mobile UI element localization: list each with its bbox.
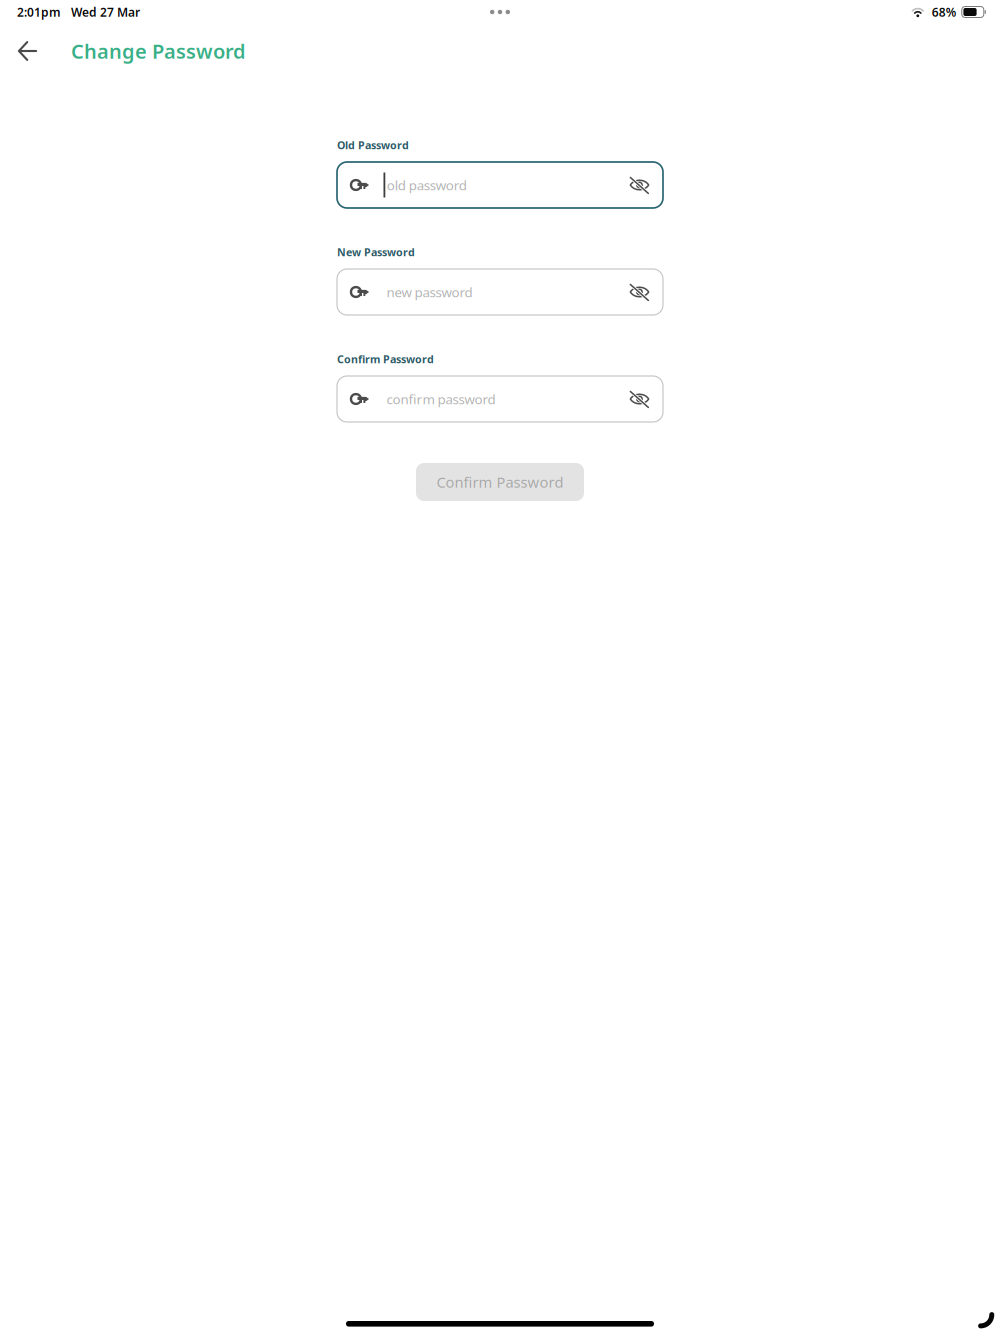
staticText: 68% — [932, 4, 957, 20]
button[interactable]: Confirm Password — [416, 463, 584, 501]
staticText: 2:01pm — [17, 4, 61, 20]
staticText: new password — [386, 283, 472, 301]
button[interactable]: new password — [337, 269, 663, 315]
button[interactable]: confirm password — [337, 376, 663, 422]
staticText: Change Password — [71, 38, 246, 64]
button[interactable]: old password — [337, 162, 663, 208]
staticText: Old Password — [337, 138, 409, 152]
staticText: old password — [387, 176, 467, 194]
staticText: Confirm Password — [436, 472, 563, 492]
staticText: confirm password — [386, 390, 495, 408]
staticText: Confirm Password — [337, 352, 434, 366]
button[interactable]: Back — [0, 29, 55, 73]
staticText: New Password — [337, 245, 415, 259]
staticText: Wed 27 Mar — [71, 4, 140, 20]
